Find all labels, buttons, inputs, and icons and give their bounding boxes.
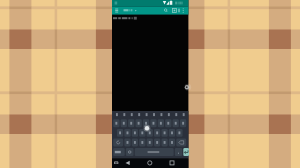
button[interactable]: More options	[179, 7, 188, 15]
button[interactable]: Search	[161, 7, 170, 15]
button[interactable]: Recent apps	[169, 159, 188, 168]
button[interactable]: Home	[150, 159, 169, 168]
button[interactable]: Symbols	[113, 148, 126, 156]
button[interactable]: Space	[135, 148, 168, 156]
button[interactable]: Devices	[170, 7, 179, 15]
button[interactable]: Enter	[177, 148, 186, 156]
button[interactable]: Hide keyboard	[113, 159, 132, 168]
button[interactable]: Assistive touch	[183, 83, 189, 92]
button[interactable]: Project title	[123, 7, 155, 15]
button[interactable]: Back	[132, 159, 151, 168]
button[interactable]: Terminal output	[112, 15, 188, 111]
button[interactable]: Navigation menu	[113, 7, 123, 15]
